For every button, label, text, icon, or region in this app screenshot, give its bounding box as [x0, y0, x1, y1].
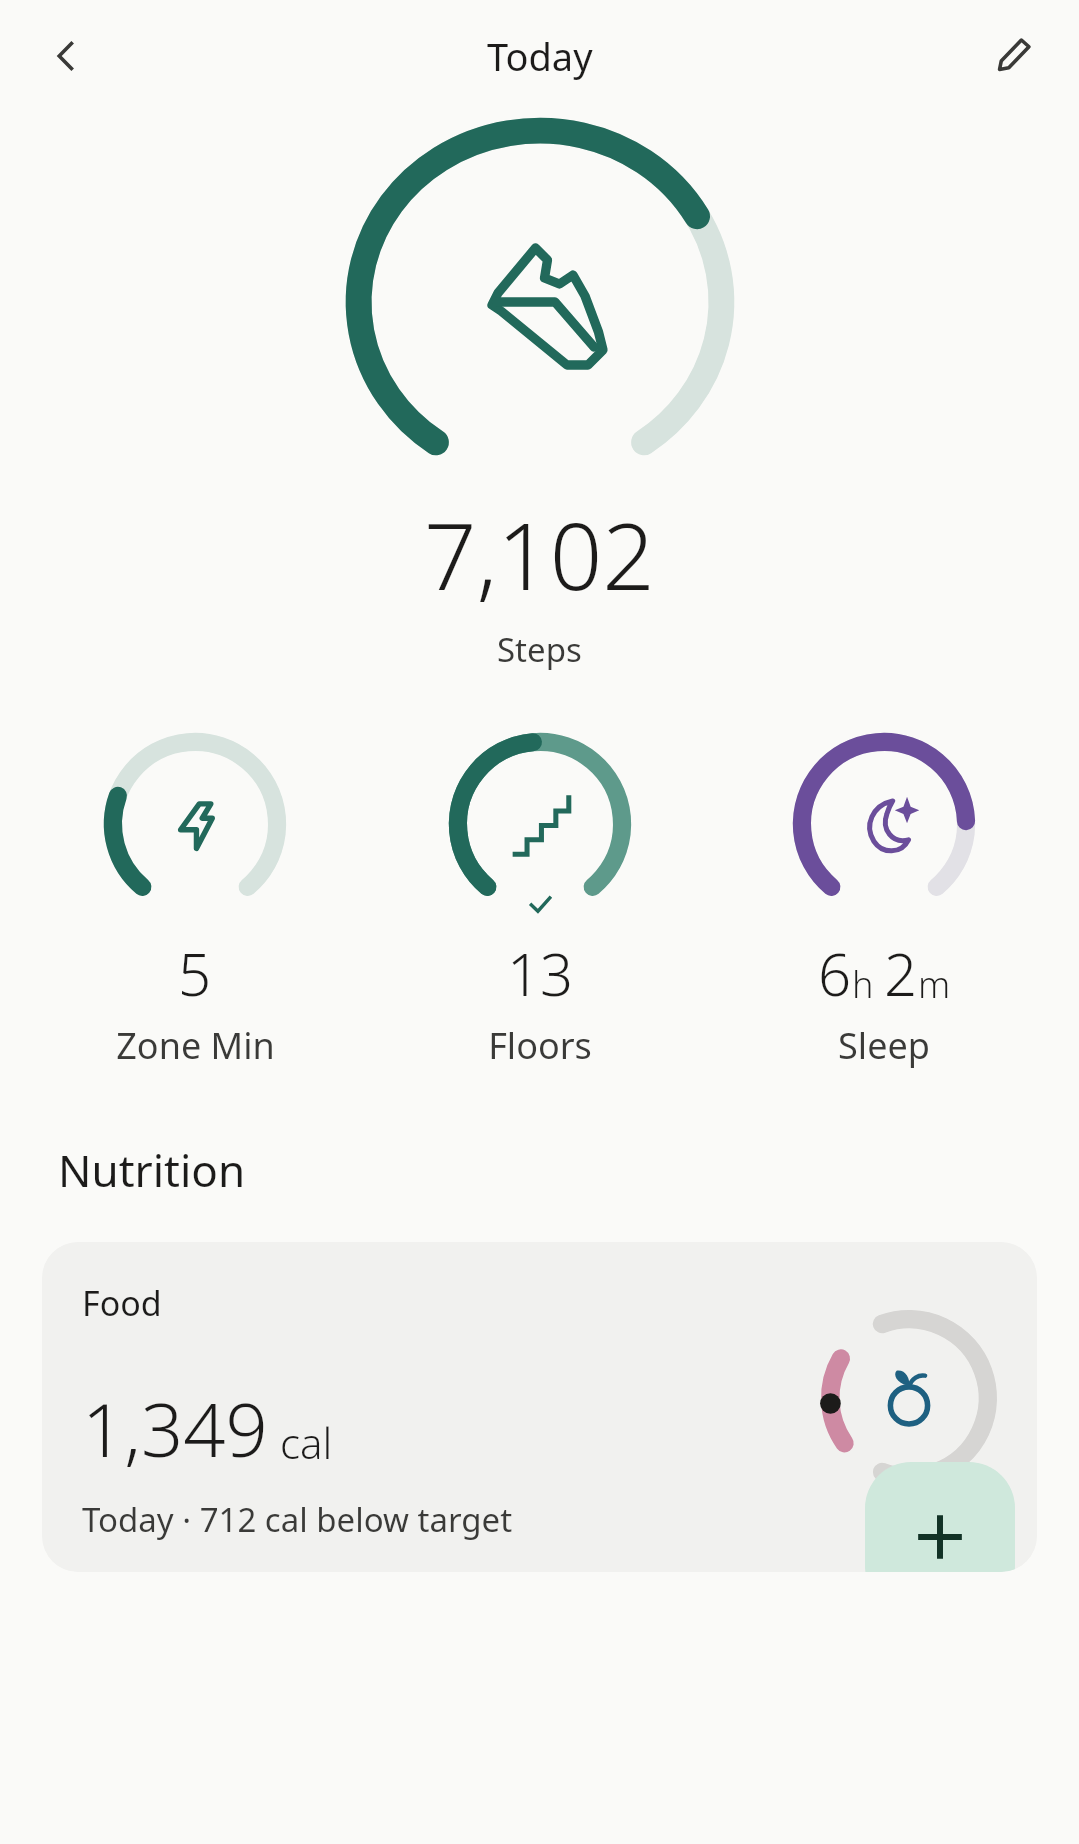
staticText: 2	[884, 934, 918, 1013]
staticText: Sleep	[838, 1021, 930, 1070]
staticText: Steps	[497, 627, 582, 672]
staticText: Today	[487, 30, 593, 82]
staticText: Food	[82, 1280, 162, 1326]
button[interactable]: Back	[34, 24, 98, 88]
button[interactable]: Food	[42, 1242, 1037, 1572]
staticText: Zone Min	[116, 1021, 275, 1070]
button[interactable]: Add food	[865, 1462, 1015, 1572]
staticText: m	[918, 960, 951, 1009]
staticText: Today · 712 cal below target	[82, 1497, 513, 1542]
button[interactable]: 5	[45, 730, 345, 1070]
staticText: 13	[507, 934, 574, 1013]
button[interactable]	[340, 112, 740, 492]
button[interactable]: Edit	[977, 20, 1049, 92]
staticText: cal	[280, 1414, 333, 1471]
staticText: 7,102	[424, 492, 655, 617]
staticText: Nutrition	[58, 1140, 246, 1200]
staticText: 6	[818, 934, 852, 1013]
staticText: 5	[178, 934, 212, 1013]
staticText: Floors	[488, 1021, 592, 1070]
button[interactable]: 6	[734, 730, 1034, 1070]
staticText: h	[852, 960, 874, 1009]
staticText: 1,349	[82, 1378, 268, 1479]
button[interactable]: 13	[390, 730, 690, 1070]
